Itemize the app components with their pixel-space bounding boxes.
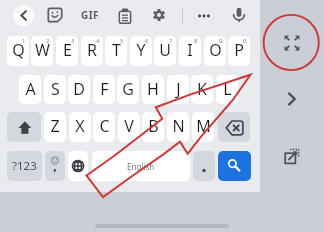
button[interactable]: Y [130, 36, 152, 66]
staticText: 3 [71, 37, 75, 45]
staticText: 7 [169, 37, 173, 45]
button[interactable]: ?123 [7, 151, 42, 181]
button[interactable]: I [179, 36, 201, 66]
staticText: V [124, 115, 134, 137]
button[interactable]: Clipboard [115, 6, 135, 26]
button[interactable]: K [191, 75, 213, 104]
staticText: R [87, 39, 97, 61]
staticText: GIF [81, 8, 99, 22]
button[interactable]: Next [281, 88, 303, 110]
button[interactable]: N [167, 112, 189, 142]
staticText: G [122, 78, 134, 100]
button[interactable]: Backspace [218, 112, 250, 142]
staticText: 9 [219, 37, 223, 45]
button[interactable]: F [93, 75, 115, 104]
button[interactable]: O [204, 36, 226, 66]
staticText: S [51, 78, 60, 100]
staticText: T [112, 39, 121, 61]
staticText: 8 [194, 37, 198, 45]
button[interactable]: W [31, 36, 53, 66]
button[interactable]: R [81, 36, 103, 66]
button[interactable]: E [56, 36, 78, 66]
button[interactable]: Resize keyboard [281, 32, 303, 54]
button[interactable]: Settings [149, 5, 169, 25]
staticText: L [223, 78, 232, 100]
button[interactable]: Open in new window [281, 145, 303, 167]
button[interactable]: B [142, 112, 164, 142]
staticText: E [63, 39, 72, 61]
button[interactable]: L [216, 75, 238, 104]
button[interactable]: S [44, 75, 66, 104]
button[interactable]: Emoji [45, 151, 65, 181]
button[interactable]: X [69, 112, 91, 142]
button[interactable]: Z [44, 112, 66, 142]
button[interactable]: P [228, 36, 250, 66]
button[interactable]: C [93, 112, 115, 142]
staticText: 0 [243, 37, 247, 45]
button[interactable]: G [117, 75, 139, 104]
staticText: J [176, 78, 181, 100]
button[interactable]: Voice input [229, 5, 249, 25]
staticText: P [234, 39, 244, 61]
button[interactable]: More options [194, 6, 214, 26]
staticText: ?123 [12, 158, 37, 174]
button[interactable]: T [105, 36, 127, 66]
button[interactable]: D [68, 75, 90, 104]
button[interactable]: Change language [68, 151, 88, 181]
staticText: N [172, 115, 185, 137]
staticText: 5 [120, 37, 124, 45]
staticText: 6 [145, 37, 149, 45]
button[interactable]: Back [13, 5, 34, 26]
staticText: C [99, 115, 110, 137]
staticText: K [197, 78, 207, 100]
staticText: 1 [22, 37, 26, 45]
staticText: I [187, 39, 193, 61]
staticText: B [148, 115, 159, 137]
staticText: A [25, 78, 36, 100]
staticText: X [75, 115, 85, 137]
button[interactable]: GIF [80, 5, 100, 25]
staticText: D [73, 78, 85, 100]
staticText: Z [50, 115, 60, 137]
staticText: H [147, 78, 159, 100]
button[interactable]: Shift [7, 112, 41, 142]
button[interactable]: Period [193, 151, 215, 181]
staticText: Y [136, 39, 146, 61]
staticText: M [196, 115, 211, 137]
button[interactable]: M [192, 112, 214, 142]
staticText: Q [12, 39, 25, 61]
button[interactable]: J [167, 75, 189, 104]
button[interactable]: Stickers [45, 5, 65, 25]
staticText: English [127, 161, 155, 172]
staticText: O [209, 39, 222, 61]
staticText: 4 [96, 37, 100, 45]
staticText: 2 [46, 37, 50, 45]
button[interactable]: H [142, 75, 164, 104]
staticText: F [100, 78, 109, 100]
button[interactable]: U [154, 36, 176, 66]
staticText: U [159, 39, 171, 61]
button[interactable]: V [118, 112, 140, 142]
button[interactable]: A [19, 75, 41, 104]
staticText: W [35, 39, 50, 61]
button[interactable]: English [92, 151, 190, 181]
button[interactable]: Search [218, 151, 251, 181]
button[interactable]: Q [7, 36, 29, 66]
